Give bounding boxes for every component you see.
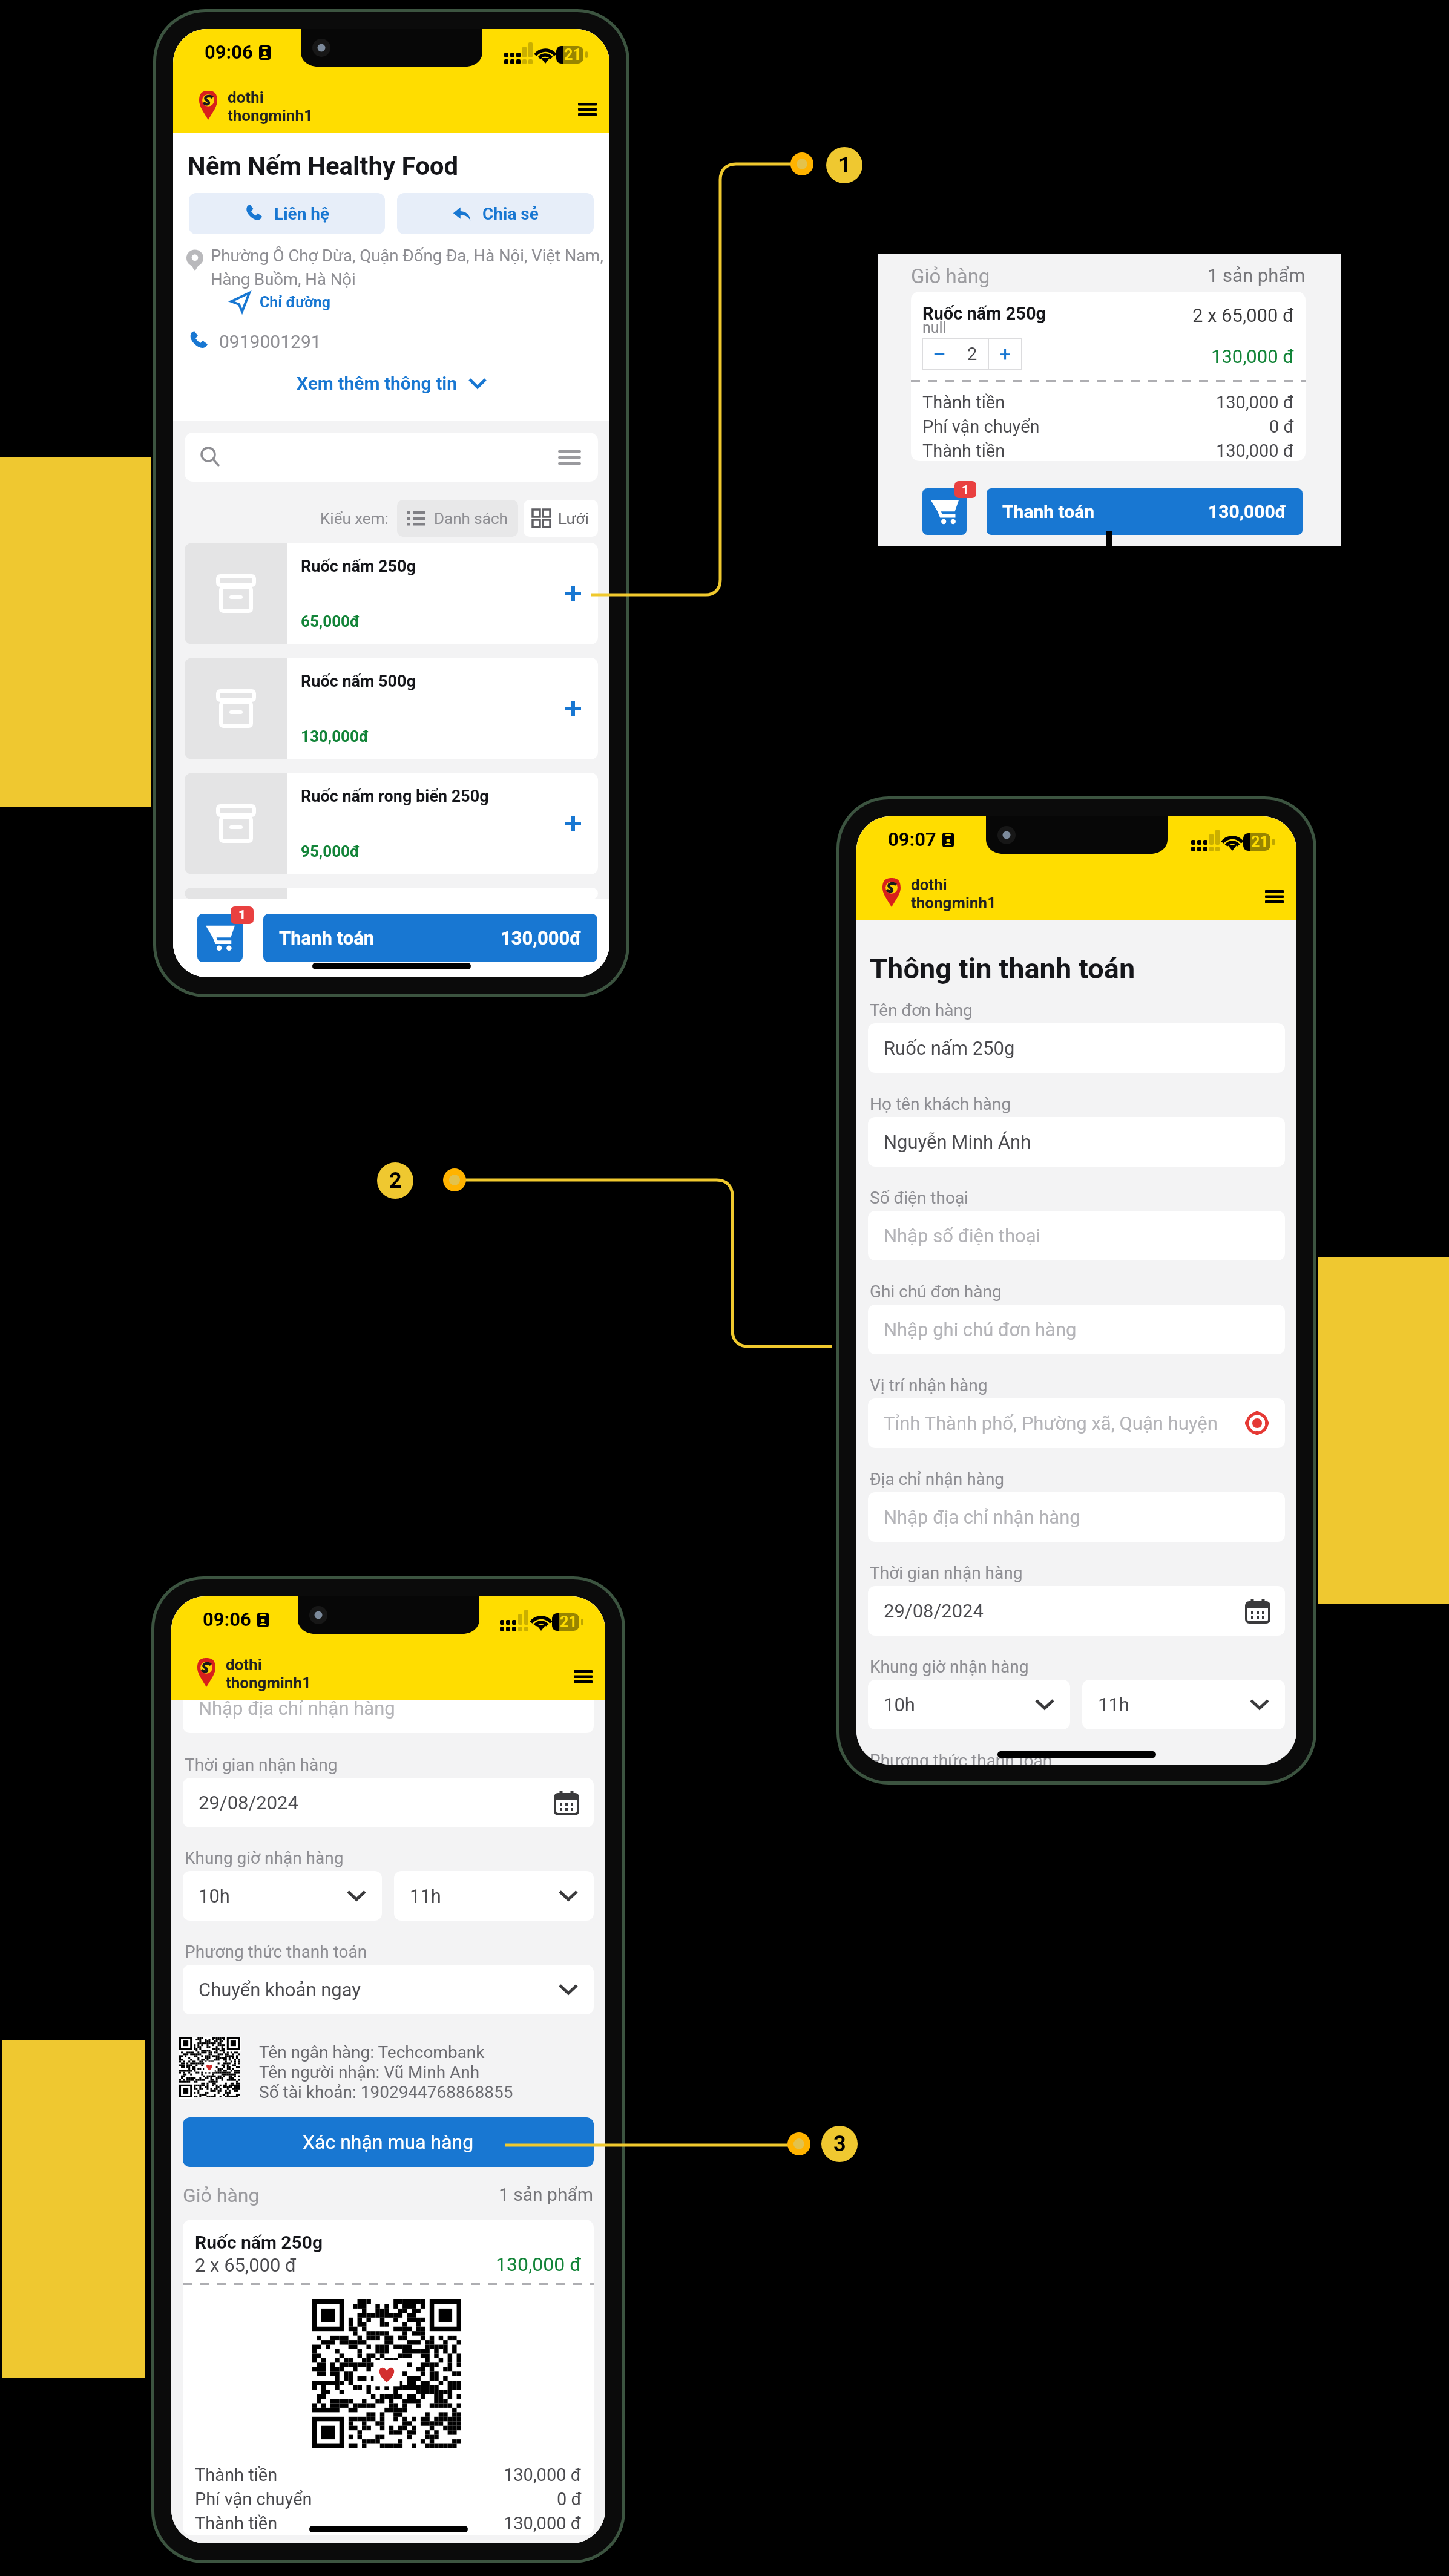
staticText: 1	[238, 908, 246, 923]
button[interactable]: 29/08/2024	[183, 1778, 594, 1827]
button[interactable]: Chia sẻ	[397, 193, 594, 234]
staticText: Vị trí nhận hàng	[870, 1375, 988, 1395]
staticText: 11h	[1098, 1694, 1129, 1716]
staticText: Thành tiền	[195, 2465, 278, 2485]
button[interactable]: Add to cart	[557, 577, 590, 610]
staticText: Ruốc nấm 250g	[884, 1037, 1015, 1059]
button[interactable]: Ruốc nấm 250g	[868, 1023, 1285, 1073]
staticText: Tên ngân hàng: Techcombank	[259, 2042, 485, 2062]
staticText: null	[922, 319, 947, 336]
staticText: 95,000đ	[301, 842, 360, 860]
staticText: 1 sản phẩm	[499, 2184, 594, 2205]
button[interactable]: 11h	[1082, 1680, 1285, 1729]
staticText: Chỉ đường	[260, 293, 331, 311]
staticText: Danh sách	[434, 510, 508, 528]
staticText: Nhập ghi chú đơn hàng	[884, 1319, 1077, 1340]
staticText: 29/08/2024	[884, 1600, 984, 1622]
staticText: Thanh toán	[279, 927, 375, 949]
staticText: thongminh1	[226, 1674, 311, 1692]
button[interactable]: Ruốc nấm rong biển 250g	[185, 773, 598, 874]
staticText: 21	[564, 46, 582, 64]
staticText: 1	[838, 152, 851, 178]
button[interactable]: Xem thêm thông tin	[173, 373, 609, 394]
staticText: 0 đ	[1269, 416, 1294, 437]
button[interactable]: –	[923, 339, 956, 369]
button[interactable]: 10h	[868, 1680, 1070, 1729]
staticText: Lưới	[558, 510, 589, 528]
staticText: Thanh toán	[1002, 501, 1095, 522]
staticText: Số tài khoản: 1902944768868855	[259, 2082, 513, 2102]
button[interactable]: Nhập ghi chú đơn hàng	[868, 1305, 1285, 1354]
staticText: 1 sản phẩm	[1207, 264, 1306, 286]
staticText: 130,000 đ	[504, 2513, 582, 2534]
button[interactable]: Chuyển khoản ngay	[183, 1965, 594, 2014]
button[interactable]: Thanh toán	[263, 914, 597, 962]
button[interactable]: Ruốc nấm 250g	[185, 543, 598, 644]
staticText: Kiểu xem:	[320, 510, 389, 528]
staticText: 130,000đ	[1208, 501, 1287, 522]
button[interactable]: Nhập địa chỉ nhận hàng	[868, 1492, 1285, 1542]
staticText: Tên người nhận: Vũ Minh Anh	[259, 2062, 480, 2082]
staticText: Nhập địa chỉ nhận hàng	[199, 1697, 395, 1719]
button[interactable]: 29/08/2024	[868, 1586, 1285, 1636]
staticText: Thành tiền	[922, 441, 1005, 461]
button[interactable]: Nhập số điện thoại	[868, 1211, 1285, 1260]
staticText: Phí vận chuyển	[195, 2489, 312, 2509]
staticText: 0919001291	[219, 331, 321, 352]
staticText: Tỉnh Thành phố, Phường xã, Quận huyện	[884, 1412, 1218, 1434]
button[interactable]: Nguyễn Minh Ánh	[868, 1117, 1285, 1167]
staticText: Ruốc nấm 250g	[301, 557, 416, 576]
button[interactable]	[185, 433, 598, 482]
button[interactable]: Ruốc nấm 500g	[185, 658, 598, 759]
staticText: Chuyển khoản ngay	[199, 1979, 361, 2001]
staticText: Liên hệ	[274, 204, 330, 224]
staticText: 21	[1251, 833, 1269, 851]
staticText: Nhập địa chỉ nhận hàng	[884, 1506, 1080, 1528]
staticText: Phương thức thanh toán	[870, 1751, 1053, 1765]
staticText: 09:07	[888, 828, 936, 850]
button[interactable]: Thanh toán	[987, 488, 1303, 535]
staticText: 130,000 đ	[1211, 346, 1294, 367]
button[interactable]: Lưới	[524, 500, 598, 537]
staticText: Khung giờ nhận hàng	[870, 1657, 1029, 1677]
staticText: Chia sẻ	[482, 204, 539, 224]
staticText: Xác nhận mua hàng	[303, 2131, 474, 2154]
staticText: Nguyễn Minh Ánh	[884, 1131, 1031, 1153]
button[interactable]: Menu	[565, 1658, 601, 1694]
staticText: 2	[967, 344, 977, 364]
staticText: Ruốc nấm rong biển 250g	[301, 787, 489, 806]
button[interactable]: 10h	[183, 1871, 382, 1921]
button[interactable]: Xác nhận mua hàng	[183, 2117, 594, 2167]
staticText: Ruốc nấm 500g	[301, 672, 416, 691]
button[interactable]: Nhập địa chỉ nhận hàng	[183, 1683, 594, 1733]
button[interactable]: 11h	[394, 1871, 594, 1921]
staticText: dothi	[226, 1656, 262, 1674]
button[interactable]: Add to cart	[557, 692, 590, 725]
button[interactable]: Danh sách	[397, 500, 518, 537]
button[interactable]	[185, 888, 598, 899]
button[interactable]: Tỉnh Thành phố, Phường xã, Quận huyện	[868, 1398, 1285, 1448]
button[interactable]: Add to cart	[557, 807, 590, 840]
staticText: Tên đơn hàng	[870, 1000, 973, 1020]
button[interactable]: Cart	[197, 914, 243, 962]
staticText: dothi	[911, 876, 947, 894]
staticText: Thông tin thanh toán	[870, 952, 1135, 985]
button[interactable]: Menu	[1256, 878, 1292, 914]
staticText: 130,000 đ	[496, 2253, 582, 2276]
button[interactable]: Menu	[569, 91, 605, 127]
staticText: Ruốc nấm 250g	[922, 303, 1046, 324]
staticText: Khung giờ nhận hàng	[185, 1848, 344, 1868]
staticText: Nhập số điện thoại	[884, 1225, 1041, 1247]
button[interactable]: Liên hệ	[189, 193, 385, 234]
staticText: 09:06	[203, 1608, 251, 1630]
staticText: Thời gian nhận hàng	[870, 1563, 1023, 1583]
button[interactable]: +	[989, 339, 1021, 369]
staticText: 09:06	[205, 41, 253, 63]
staticText: 10h	[199, 1885, 230, 1907]
staticText: Họ tên khách hàng	[870, 1094, 1011, 1114]
staticText: 130,000đ	[501, 927, 582, 949]
button[interactable]: Chỉ đường	[230, 292, 331, 312]
staticText: +	[999, 342, 1011, 366]
staticText: Thành tiền	[195, 2513, 278, 2534]
button[interactable]: Cart	[922, 488, 967, 535]
